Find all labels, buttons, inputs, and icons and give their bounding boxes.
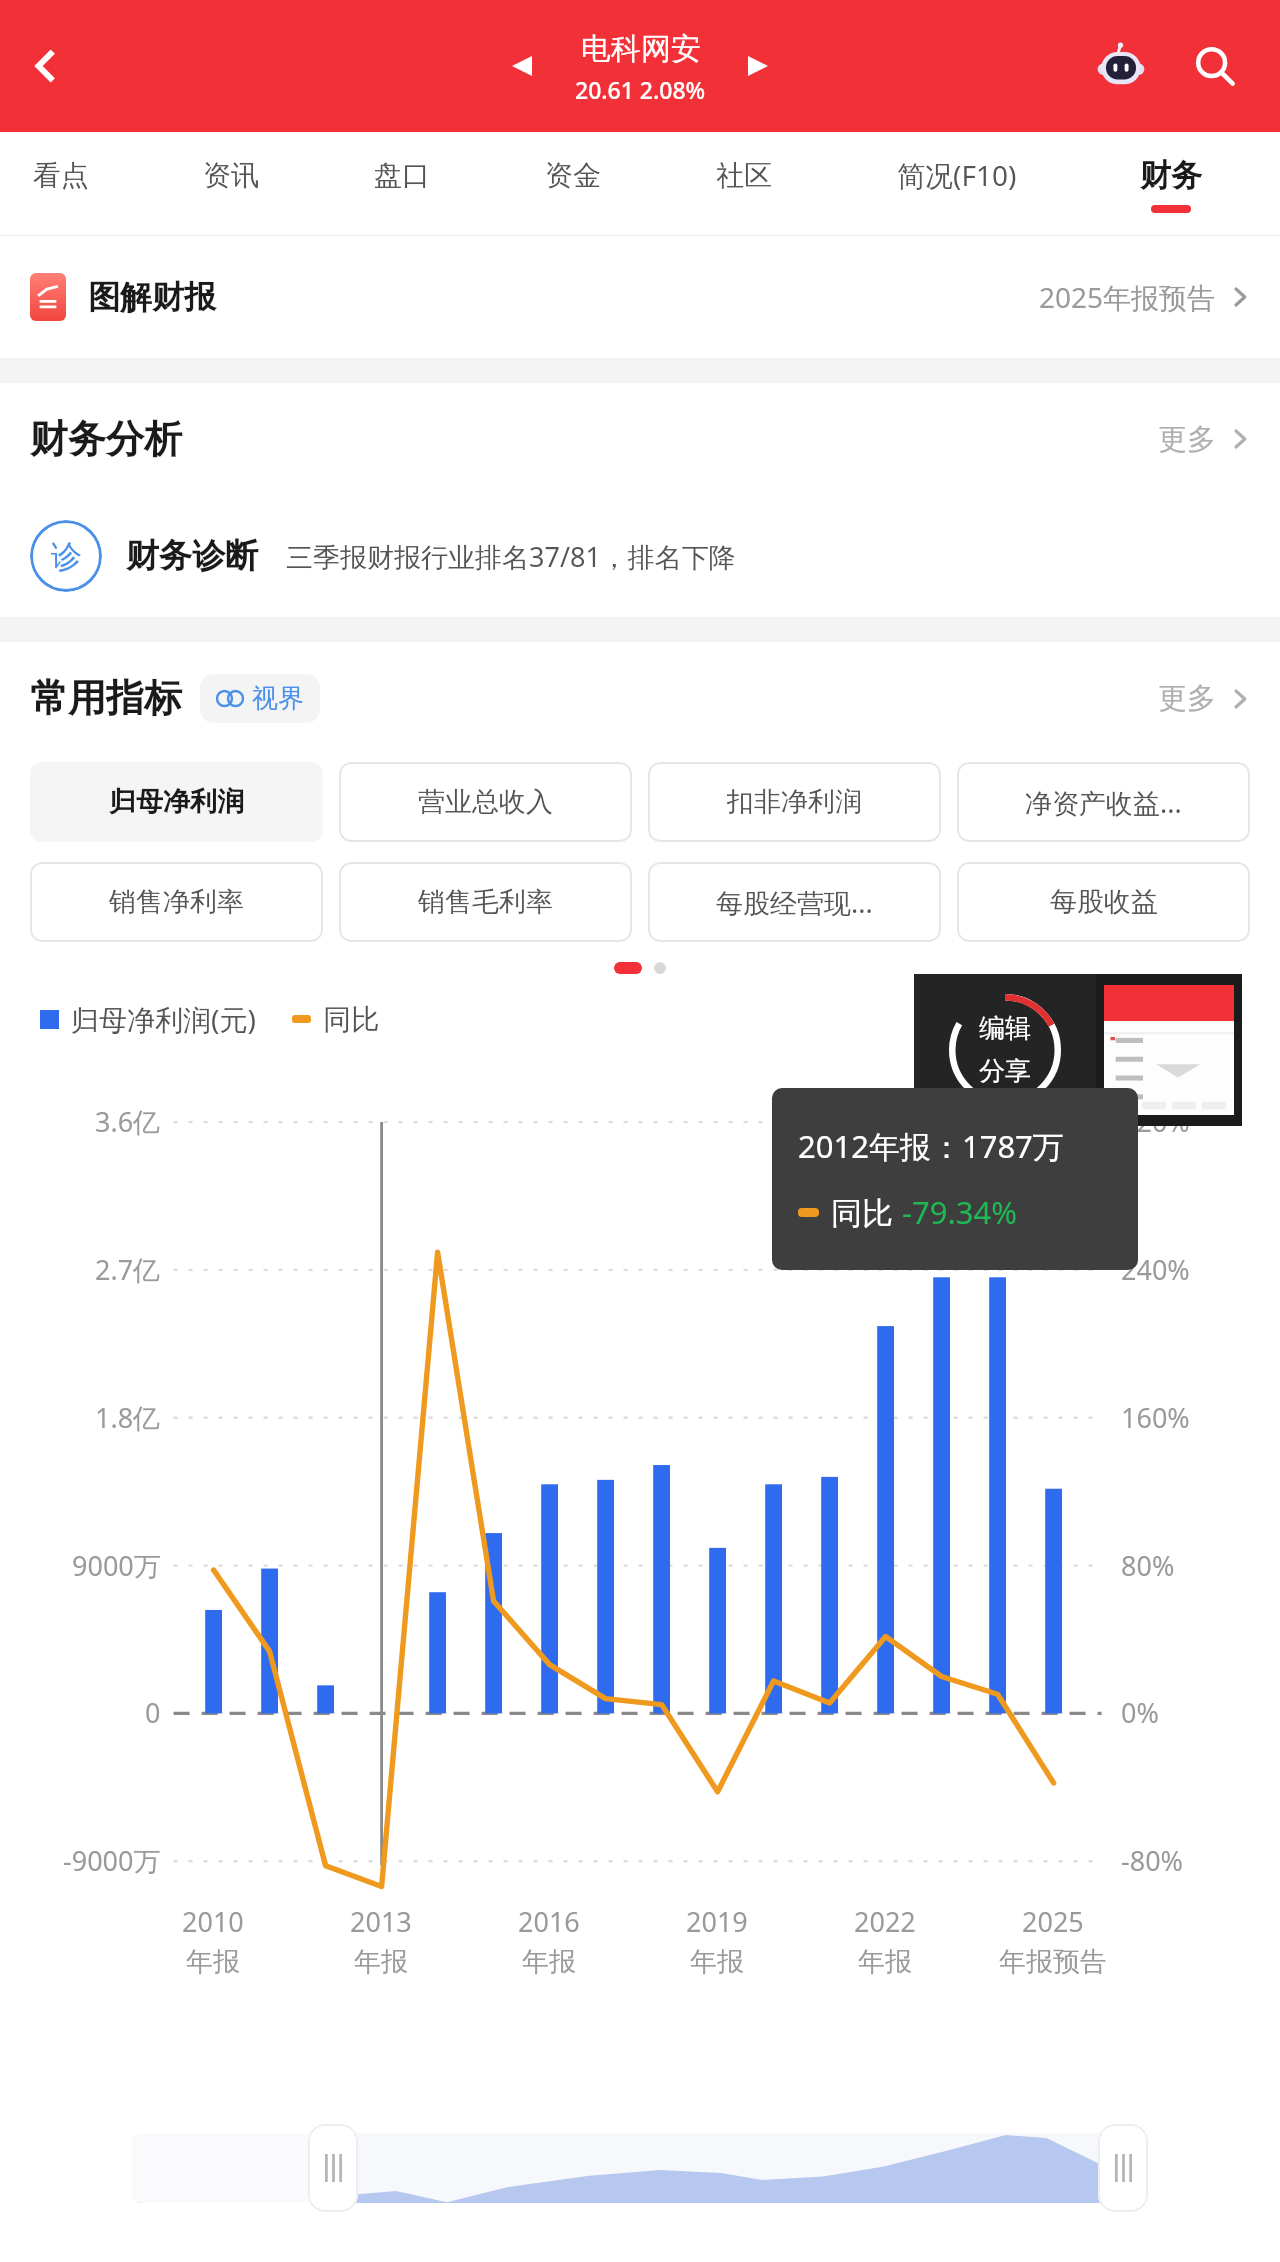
staticText: 电科网安: [581, 30, 701, 68]
button[interactable]: AI assistant: [1090, 35, 1152, 97]
staticText: 诊: [51, 537, 82, 576]
staticText: 财务诊断: [126, 535, 258, 577]
staticText: 0: [145, 1694, 161, 1731]
staticText: 图解财报: [88, 277, 216, 317]
button[interactable]: 资讯: [146, 132, 316, 236]
staticText: 1.8亿: [95, 1399, 161, 1436]
staticText: 年报: [690, 1945, 744, 1979]
staticText: 简况(F10): [897, 156, 1017, 194]
staticText: -9000万: [63, 1842, 161, 1879]
staticText: 20.61 2.08%: [575, 74, 706, 105]
staticText: 销售净利率: [109, 885, 244, 919]
button[interactable]: 电科网安: [575, 30, 706, 105]
staticText: 0%: [1121, 1694, 1159, 1731]
staticText: 80%: [1121, 1547, 1175, 1584]
button[interactable]: 财务分析: [0, 383, 1280, 495]
staticText: 看点: [33, 158, 89, 193]
staticText: 2013: [350, 1903, 412, 1940]
staticText: 盘口: [374, 158, 430, 193]
button[interactable]: 营业总收入: [339, 762, 632, 842]
staticText: 每股经营现...: [716, 884, 873, 921]
staticText: 归母净利润: [109, 785, 244, 819]
button[interactable]: Range handle: [1098, 2124, 1148, 2212]
button[interactable]: 销售毛利率: [339, 862, 632, 942]
staticText: 160%: [1121, 1399, 1190, 1436]
staticText: 2022: [854, 1903, 916, 1940]
staticText: 销售毛利率: [418, 885, 553, 919]
staticText: 财务: [1140, 156, 1202, 195]
button[interactable]: Next stock: [734, 42, 782, 90]
button[interactable]: 简况(F10): [829, 132, 1085, 236]
staticText: 2025年报预告: [1039, 278, 1216, 316]
staticText: 2012年报：1787万: [798, 1125, 1064, 1167]
staticText: 2025: [1022, 1903, 1084, 1940]
staticText: 资金: [545, 158, 601, 193]
staticText: 2010: [182, 1903, 244, 1940]
button[interactable]: 每股收益: [957, 862, 1250, 942]
staticText: -80%: [1121, 1842, 1184, 1879]
button[interactable]: 归母净利润: [30, 762, 323, 842]
staticText: 编辑: [979, 1012, 1031, 1045]
staticText: 年报: [522, 1945, 576, 1979]
staticText: 9000万: [72, 1547, 161, 1584]
staticText: 每股收益: [1050, 885, 1158, 919]
staticText: 2.7亿: [95, 1251, 161, 1288]
staticText: 三季报财报行业排名37/81，排名下降: [286, 538, 736, 575]
button[interactable]: 资金: [487, 132, 658, 236]
button[interactable]: Range handle: [308, 2124, 358, 2212]
staticText: 归母净利润(元): [71, 1000, 256, 1038]
staticText: 分享: [979, 1055, 1031, 1088]
button[interactable]: Search: [1184, 35, 1246, 97]
staticText: 常用指标: [30, 674, 182, 722]
button[interactable]: 盘口: [316, 132, 487, 236]
staticText: 3.6亿: [95, 1103, 161, 1140]
button[interactable]: 诊: [0, 495, 1280, 617]
staticText: 2019: [686, 1903, 748, 1940]
button[interactable]: 视界: [200, 674, 320, 723]
staticText: 社区: [716, 158, 772, 193]
staticText: 净资产收益...: [1025, 784, 1182, 821]
button[interactable]: Back: [14, 34, 78, 98]
button[interactable]: 扣非净利润: [648, 762, 941, 842]
button[interactable]: 销售净利率: [30, 862, 323, 942]
button[interactable]: Previous stock: [498, 42, 546, 90]
staticText: 240%: [1121, 1251, 1190, 1288]
staticText: 资讯: [203, 158, 259, 193]
staticText: 更多: [1158, 421, 1216, 458]
button[interactable]: 更多: [1158, 680, 1250, 717]
button[interactable]: 财务: [1085, 132, 1256, 236]
staticText: 年报: [858, 1945, 912, 1979]
button[interactable]: 社区: [658, 132, 829, 236]
staticText: -79.34%: [902, 1191, 1017, 1233]
staticText: 视界: [252, 682, 304, 715]
button[interactable]: 每股经营现...: [648, 862, 941, 942]
staticText: 年报预告: [999, 1945, 1107, 1979]
staticText: 2016: [518, 1903, 580, 1940]
staticText: 年报: [186, 1945, 240, 1979]
staticText: 扣非净利润: [727, 785, 862, 819]
button[interactable]: 净资产收益...: [957, 762, 1250, 842]
staticText: 单季度最新: [1100, 1002, 1240, 1037]
staticText: 320%: [1121, 1103, 1190, 1140]
staticText: 更多: [1158, 680, 1216, 717]
staticText: 年报: [354, 1945, 408, 1979]
button[interactable]: 看点: [0, 132, 146, 236]
staticText: 财务分析: [30, 415, 182, 463]
button[interactable]: 图解财报: [0, 236, 1280, 358]
button[interactable]: Edit and share: [914, 974, 1096, 1126]
staticText: 同比: [323, 1002, 379, 1037]
button[interactable]: 单季度最新: [1048, 1000, 1240, 1038]
staticText: 营业总收入: [418, 785, 553, 819]
staticText: 同比: [831, 1191, 902, 1233]
